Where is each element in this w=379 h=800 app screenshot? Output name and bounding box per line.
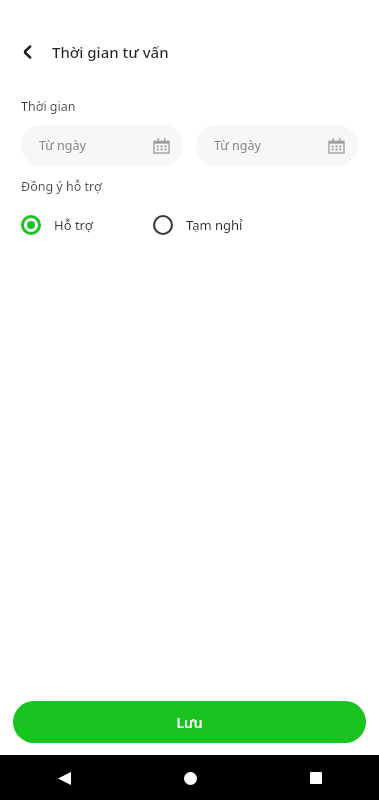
button[interactable]: Back bbox=[47, 761, 81, 795]
staticText: Đồng ý hỗ trợ bbox=[21, 178, 102, 195]
button[interactable]: Tạm nghỉ bbox=[153, 211, 243, 239]
staticText: Thời gian bbox=[21, 98, 76, 115]
staticText: Thời gian tư vấn bbox=[52, 42, 169, 62]
button[interactable]: Back bbox=[10, 34, 46, 70]
staticText: Từ ngày bbox=[214, 137, 261, 154]
staticText: Tạm nghỉ bbox=[186, 216, 243, 234]
staticText: Hỗ trợ bbox=[54, 216, 93, 234]
button[interactable]: Lưu bbox=[13, 701, 366, 743]
staticText: Lưu bbox=[176, 713, 203, 732]
button[interactable]: Recent apps bbox=[299, 761, 333, 795]
button[interactable]: Hỗ trợ bbox=[21, 211, 153, 239]
button[interactable]: Từ ngày bbox=[21, 125, 183, 166]
button[interactable]: Từ ngày bbox=[196, 125, 358, 166]
button[interactable]: Home bbox=[173, 761, 207, 795]
staticText: Từ ngày bbox=[39, 137, 86, 154]
